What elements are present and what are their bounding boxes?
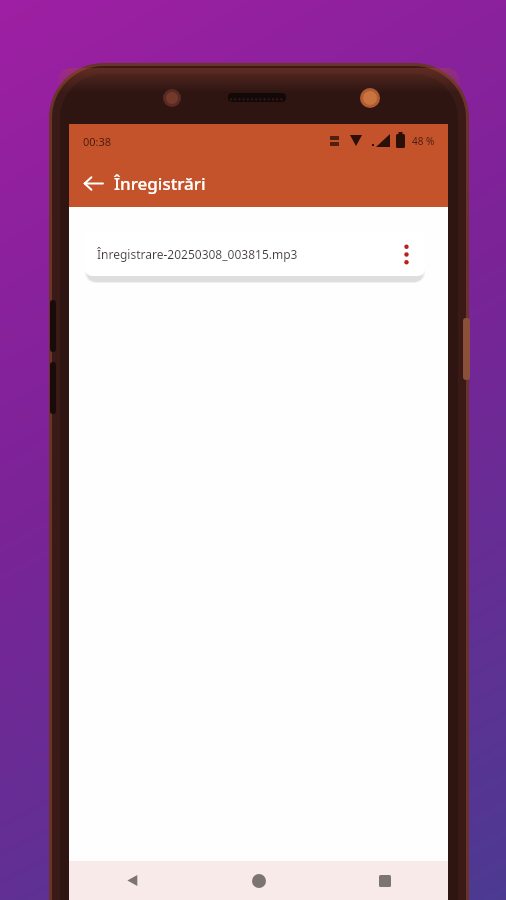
button[interactable]: Home — [196, 861, 322, 900]
button[interactable]: Back — [69, 861, 196, 900]
button[interactable]: More options — [387, 232, 425, 276]
staticText: 00:38 — [83, 134, 112, 149]
staticText: Înregistrări — [114, 172, 206, 195]
button[interactable]: Back — [74, 164, 112, 202]
staticText: Înregistrare-20250308_003815.mp3 — [97, 246, 387, 262]
button[interactable]: Recent apps — [322, 861, 448, 900]
button[interactable]: Înregistrare-20250308_003815.mp3 — [85, 232, 425, 276]
staticText: 48 % — [412, 134, 435, 148]
